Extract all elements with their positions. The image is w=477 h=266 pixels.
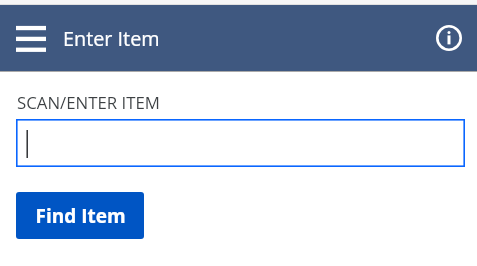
button[interactable] (16, 119, 465, 167)
staticText: Enter Item (63, 25, 160, 52)
staticText: SCAN/ENTER ITEM (17, 91, 160, 114)
button[interactable]: Find Item (16, 192, 144, 239)
button[interactable]: Information (427, 16, 471, 60)
staticText: Find Item (35, 203, 126, 229)
button[interactable]: Open navigation menu (7, 14, 55, 62)
